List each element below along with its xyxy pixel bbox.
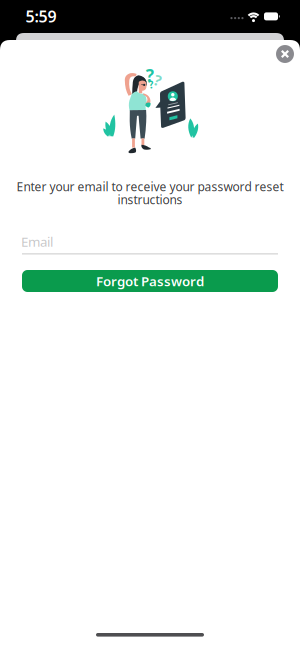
button[interactable]: Email <box>22 236 278 255</box>
staticText: instructions <box>117 191 182 207</box>
staticText: 5:59 <box>25 6 56 27</box>
staticText: ? <box>148 77 153 91</box>
staticText: Forgot Password <box>96 272 204 290</box>
button[interactable]: Forgot Password <box>22 270 278 292</box>
staticText: Enter your email to receive your passwor… <box>16 178 283 194</box>
staticText: Email <box>21 233 53 250</box>
staticText: ? <box>154 70 161 90</box>
staticText: ? <box>146 64 154 87</box>
button[interactable] <box>276 45 294 63</box>
